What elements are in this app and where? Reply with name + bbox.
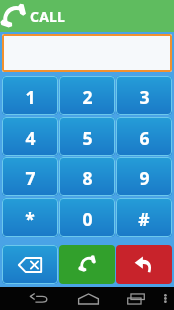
staticText: 4 [25, 126, 36, 150]
button[interactable]: 2 [59, 76, 115, 115]
button[interactable]: 3 [116, 76, 172, 115]
staticText: # [138, 207, 150, 231]
staticText: 5 [82, 126, 93, 150]
staticText: 6 [139, 126, 150, 150]
button[interactable]: Call [0, 0, 174, 32]
button[interactable]: Backspace [2, 245, 58, 284]
button[interactable]: 1 [2, 76, 58, 115]
staticText: 1 [25, 85, 36, 109]
staticText: * [25, 207, 35, 231]
button[interactable]: 9 [116, 157, 172, 196]
button[interactable]: Back [25, 287, 53, 310]
button[interactable]: # [116, 198, 172, 237]
button[interactable]: 0 [59, 198, 115, 237]
staticText: 7 [25, 166, 36, 190]
staticText: 0 [82, 207, 93, 231]
button[interactable]: 5 [59, 117, 115, 156]
staticText: 2 [82, 85, 93, 109]
button[interactable]: 7 [2, 157, 58, 196]
button[interactable]: Recent apps [122, 287, 150, 310]
button[interactable] [2, 34, 172, 72]
button[interactable]: Back [116, 245, 172, 284]
button[interactable]: 4 [2, 117, 58, 156]
staticText: CALL [30, 7, 66, 26]
button[interactable]: Call [59, 245, 115, 284]
staticText: 9 [139, 166, 150, 190]
staticText: 3 [139, 85, 150, 109]
staticText: 8 [82, 166, 93, 190]
other: Call [1, 3, 28, 30]
button[interactable]: * [2, 198, 58, 237]
button[interactable]: 6 [116, 117, 172, 156]
button[interactable]: More options [156, 287, 174, 310]
button[interactable]: Home [74, 287, 102, 310]
button[interactable]: 8 [59, 157, 115, 196]
